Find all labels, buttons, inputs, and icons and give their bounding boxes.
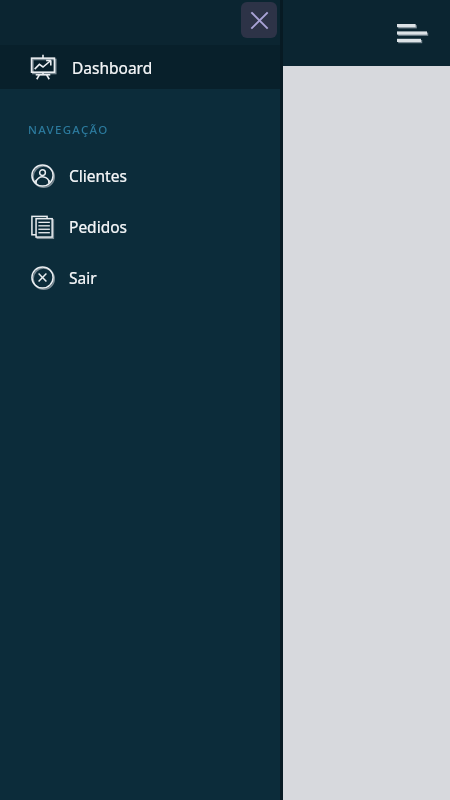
staticText: NAVEGAÇÃO	[28, 122, 109, 138]
button[interactable]: Sair	[0, 264, 280, 290]
staticText: Pedidos	[69, 216, 127, 237]
staticText: Clientes	[69, 165, 127, 186]
button[interactable]: Dashboard	[0, 45, 280, 89]
button[interactable]: Pedidos	[0, 213, 280, 239]
button[interactable]: Clientes	[0, 162, 280, 188]
staticText: Sair	[69, 267, 97, 288]
staticText: Dashboard	[72, 57, 153, 78]
button[interactable]: Close navigation menu	[241, 2, 277, 38]
button[interactable]: Open navigation menu	[388, 9, 436, 57]
